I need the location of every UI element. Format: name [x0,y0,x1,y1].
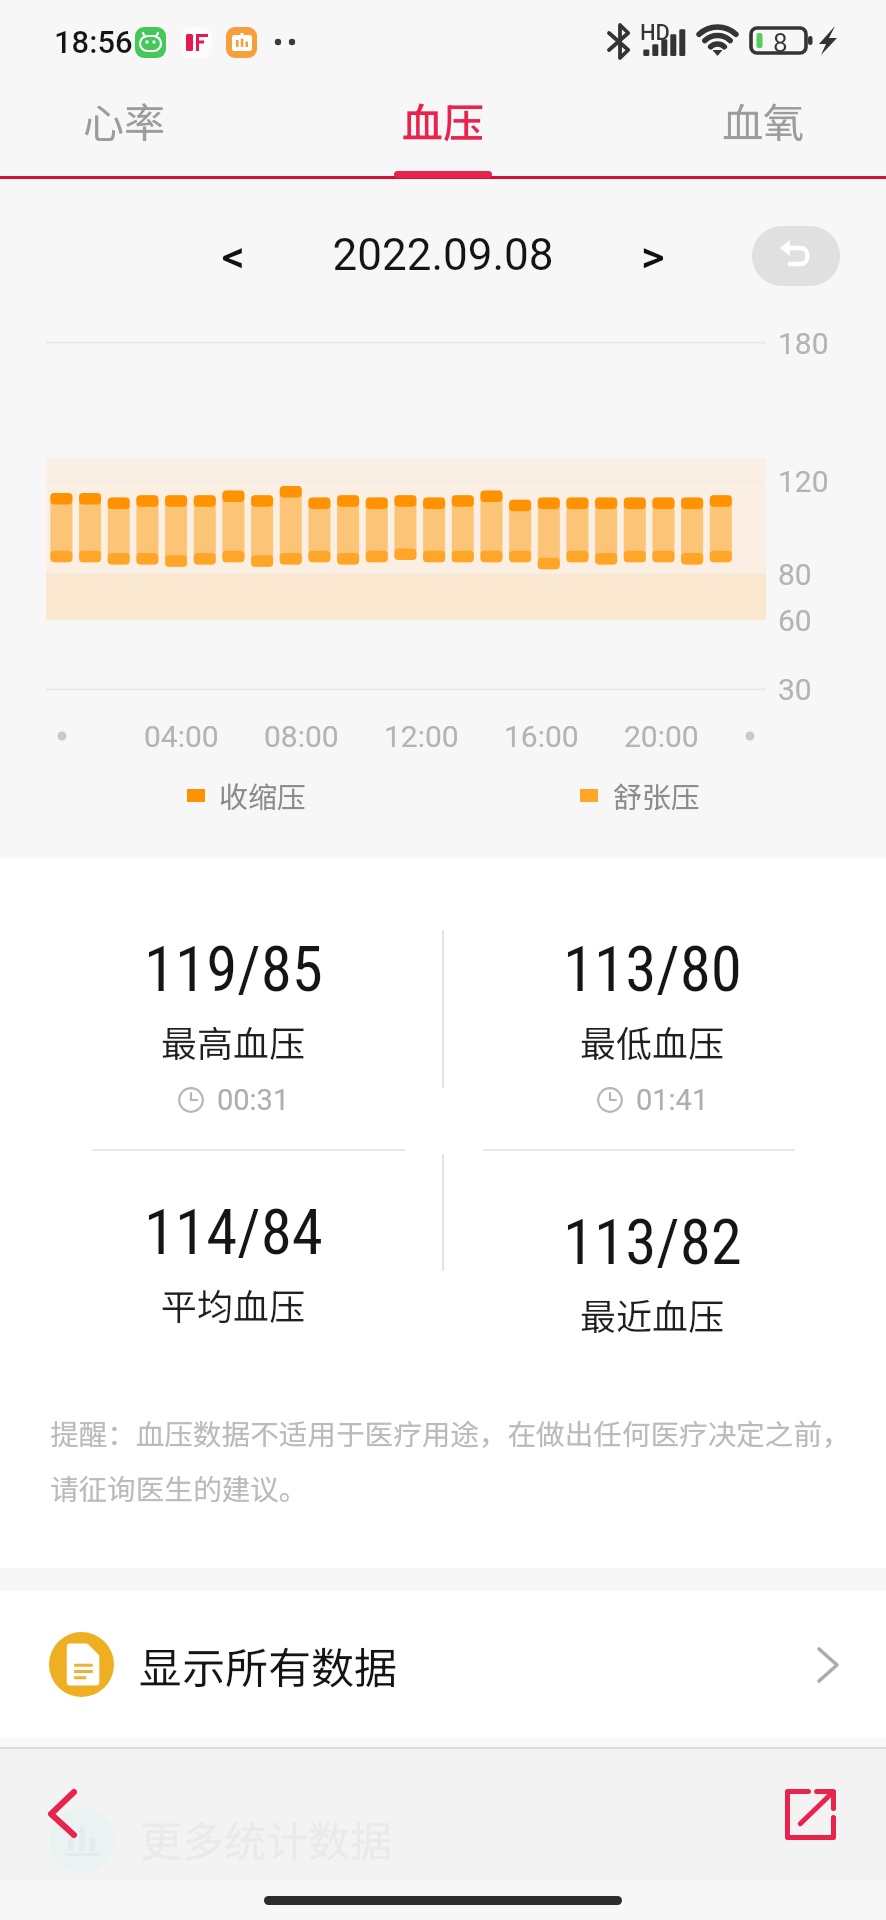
staticText: 80 [778,557,812,592]
staticText: 20:00 [624,719,699,754]
staticText: 60 [778,603,812,638]
button[interactable]: 114/84 [12,1196,455,1330]
button[interactable]: 舒张压 [553,770,659,820]
staticText: 113/82 [563,1206,742,1280]
staticText: 120 [778,464,829,499]
staticText: 最高血压 [161,1015,306,1067]
staticText: 提醒：血压数据不适用于医疗用途，在做出任何医疗决定之前，请征询医生的建议。 [50,1412,865,1508]
staticText: 18:56 [54,24,133,60]
staticText: 舒张压 [613,774,701,816]
button[interactable]: Undo [752,226,840,286]
staticText: 08:00 [264,719,339,754]
staticText: 30 [778,672,812,707]
staticText: HD [640,20,670,46]
button[interactable]: 心率 [14,74,234,164]
button[interactable]: 提醒：血压数据不适用于医疗用途，在做出任何医疗决定之前，请征询医生的建议。 [50,1412,865,1508]
button[interactable]: 113/80 [431,933,874,1117]
staticText: 119/85 [144,933,323,1007]
staticText: 更多统计数据 [140,1808,393,1869]
staticText: 2022.09.08 [332,229,554,281]
button[interactable]: 收缩压 [160,770,266,820]
staticText: 12:00 [384,719,459,754]
staticText: 平均血压 [161,1278,306,1330]
button[interactable]: Previous day [203,226,263,286]
button[interactable]: 119/85 [12,933,455,1117]
staticText: 16:00 [504,719,579,754]
staticText: 04:00 [144,719,219,754]
button[interactable]: 血氧 [653,74,873,164]
staticText: 01:41 [636,1083,709,1117]
button[interactable]: Open in new window [770,1774,850,1854]
button[interactable]: Next day [623,226,683,286]
staticText: 血压 [402,90,484,149]
staticText: 最近血压 [580,1288,725,1340]
staticText: 血氧 [722,90,804,149]
staticText: 最低血压 [580,1015,725,1067]
staticText: 00:31 [217,1083,290,1117]
staticText: 收缩压 [219,774,307,816]
staticText: > [641,230,665,283]
staticText: 113/80 [563,933,742,1007]
staticText: < [222,230,245,283]
staticText: 8 [773,28,788,54]
button[interactable]: 显示所有数据 [0,1591,886,1738]
staticText: 114/84 [144,1196,323,1270]
button[interactable]: 血压 [333,74,553,164]
staticText: 180 [778,326,829,361]
staticText: 心率 [83,90,165,149]
button[interactable]: 113/82 [431,1206,874,1340]
staticText: 显示所有数据 [139,1634,397,1696]
